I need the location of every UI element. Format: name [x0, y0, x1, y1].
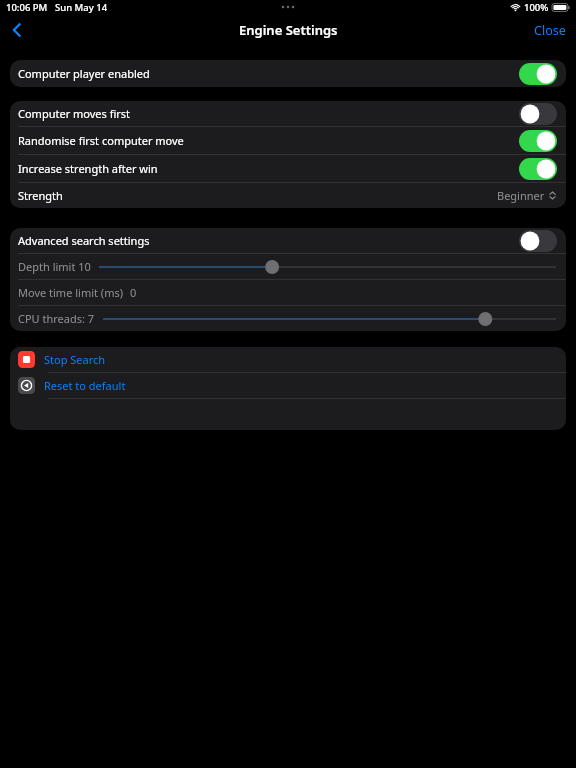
button[interactable]: Move time limit (ms): [10, 280, 566, 305]
button[interactable]: On: [519, 130, 557, 152]
staticText: Stop Search: [44, 352, 106, 367]
button[interactable]: CPU threads: 7: [10, 306, 566, 331]
staticText: Computer moves first: [18, 106, 131, 121]
staticText: 100%: [524, 1, 549, 14]
button[interactable]: Depth limit 10: [10, 254, 566, 279]
staticText: CPU threads: 7: [18, 311, 95, 326]
button[interactable]: Strength: [10, 183, 566, 208]
button[interactable]: Increase strength after win: [10, 155, 566, 182]
button[interactable]: Off: [519, 103, 557, 125]
button[interactable]: Off: [519, 230, 557, 252]
button[interactable]: Close: [530, 18, 570, 43]
staticText: Randomise first computer move: [18, 133, 184, 148]
staticText: 0: [130, 285, 137, 300]
button[interactable]: Stop Search: [10, 347, 566, 372]
staticText: Close: [534, 22, 566, 39]
staticText: Reset to default: [44, 378, 126, 393]
staticText: Sun May 14: [55, 1, 108, 14]
staticText: Increase strength after win: [18, 161, 158, 176]
button[interactable]: On: [519, 158, 557, 180]
button[interactable]: Back: [0, 14, 34, 46]
staticText: Advanced search settings: [18, 233, 150, 248]
staticText: Engine Settings: [239, 21, 338, 39]
staticText: Move time limit (ms): [18, 285, 124, 300]
staticText: 10:06 PM: [6, 1, 48, 14]
button[interactable]: Computer moves first: [10, 101, 566, 126]
button[interactable]: Advanced search settings: [10, 228, 566, 253]
staticText: Depth limit 10: [18, 259, 91, 274]
staticText: Computer player enabled: [18, 66, 150, 81]
staticText: Beginner: [497, 188, 545, 203]
staticText: Strength: [18, 188, 63, 203]
button[interactable]: Randomise first computer move: [10, 127, 566, 154]
button[interactable]: On: [519, 63, 557, 85]
button[interactable]: Reset to default: [10, 373, 566, 398]
button[interactable]: Computer player enabled: [10, 60, 566, 87]
